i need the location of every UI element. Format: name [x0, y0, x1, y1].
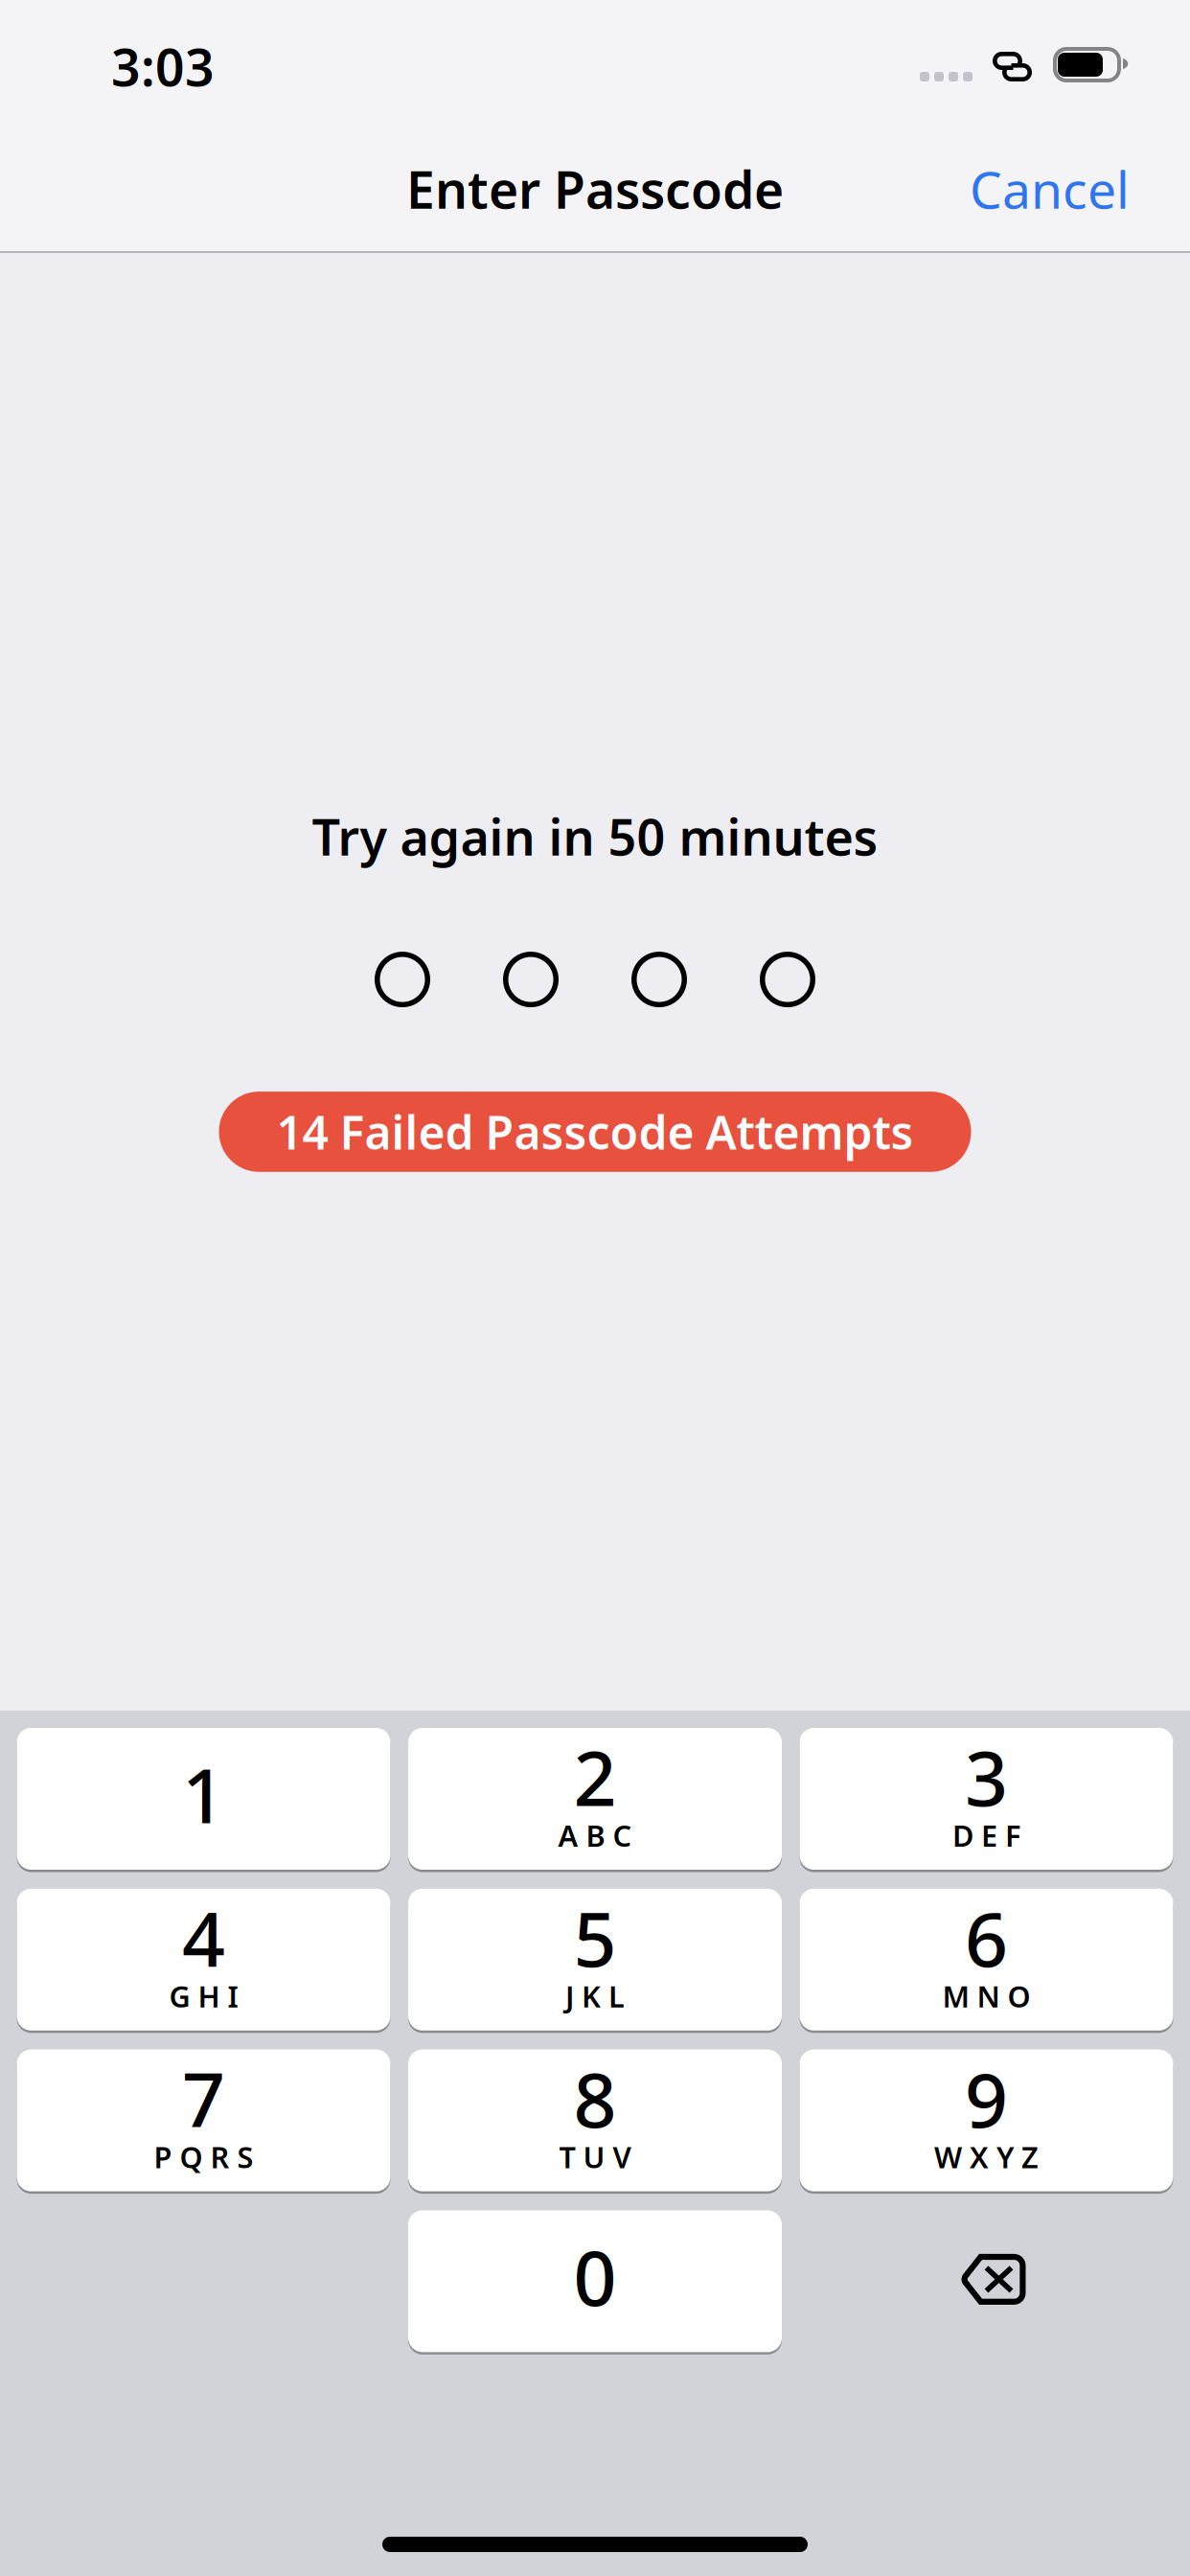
- staticText: 8: [573, 2048, 617, 2148]
- button[interactable]: 8: [408, 2049, 782, 2191]
- button[interactable]: 6: [800, 1889, 1173, 2031]
- staticText: G H I: [169, 1976, 238, 2015]
- button[interactable]: 9: [800, 2049, 1173, 2191]
- staticText: Enter Passcode: [406, 155, 784, 223]
- button[interactable]: Delete: [800, 2210, 1173, 2352]
- staticText: 0: [573, 2226, 617, 2327]
- staticText: 14 Failed Passcode Attempts: [276, 1101, 914, 1162]
- button[interactable]: 1: [17, 1728, 390, 1870]
- staticText: 2: [573, 1727, 617, 1827]
- staticText: P Q R S: [154, 2137, 253, 2176]
- button[interactable]: 2: [408, 1728, 782, 1870]
- button[interactable]: 3: [800, 1728, 1173, 1870]
- staticText: Cancel: [970, 155, 1130, 223]
- staticText: A B C: [558, 1816, 632, 1855]
- button[interactable]: 0: [408, 2210, 782, 2352]
- staticText: 6: [965, 1888, 1008, 1988]
- staticText: 1: [182, 1744, 225, 1844]
- staticText: T U V: [559, 2137, 631, 2176]
- button[interactable]: 4: [17, 1889, 390, 2031]
- staticText: 5: [573, 1888, 617, 1988]
- staticText: M N O: [942, 1976, 1030, 2015]
- staticText: 7: [182, 2048, 225, 2148]
- staticText: 3:03: [111, 33, 215, 100]
- staticText: Try again in 50 minutes: [312, 803, 878, 869]
- staticText: 4: [182, 1888, 225, 1988]
- staticText: 3: [965, 1727, 1008, 1827]
- button[interactable]: 5: [408, 1889, 782, 2031]
- staticText: 9: [965, 2048, 1008, 2148]
- staticText: D E F: [952, 1816, 1020, 1855]
- button[interactable]: 7: [17, 2049, 390, 2191]
- staticText: W X Y Z: [934, 2137, 1039, 2176]
- staticText: J K L: [565, 1976, 625, 2015]
- button[interactable]: Cancel: [941, 138, 1158, 240]
